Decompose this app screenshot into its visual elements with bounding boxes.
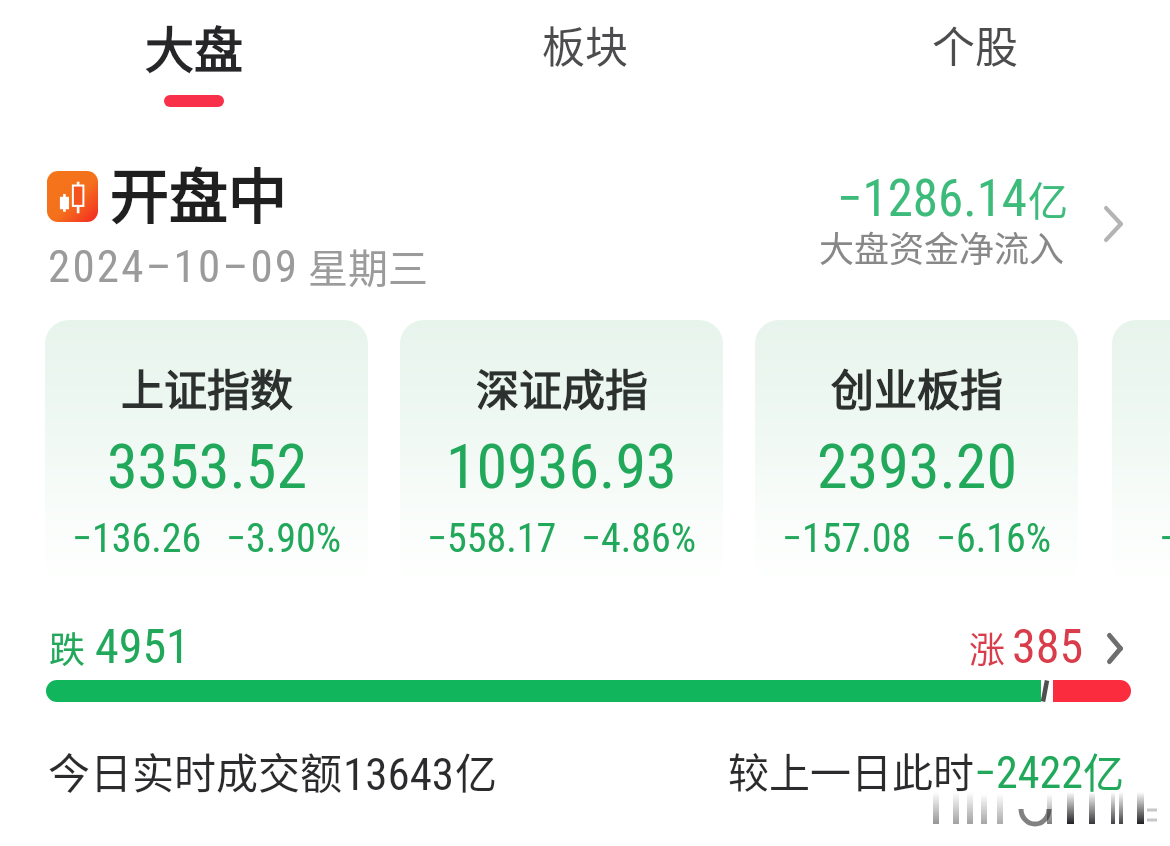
staticText: 板块 xyxy=(542,13,628,75)
staticText: −2422 xyxy=(974,747,1083,799)
staticText: 较上一日此时 xyxy=(728,740,974,799)
staticText: 跌 xyxy=(49,621,86,673)
staticText: −6.16% xyxy=(936,515,1052,562)
staticText: 3353.52 xyxy=(107,430,307,503)
button[interactable]: −1286.14 xyxy=(690,169,1068,229)
staticText: 13643 xyxy=(343,748,455,801)
staticText: −3.90% xyxy=(226,515,342,562)
staticText: −157.08 xyxy=(782,515,912,562)
staticText: 2393.20 xyxy=(817,430,1017,503)
staticText: 今日实时成交额 xyxy=(48,740,343,801)
staticText: 385 xyxy=(1012,618,1084,674)
staticText: 2024–10–09 xyxy=(48,240,300,293)
button[interactable]: 大盘 xyxy=(64,11,324,107)
staticText: −6.20 xyxy=(1159,515,1170,562)
staticText: 星期三 xyxy=(308,237,428,295)
staticText: 深证成指 xyxy=(476,356,648,418)
staticText: −1286.14 xyxy=(837,169,1028,229)
staticText: −4.86% xyxy=(581,515,697,562)
staticText: 大盘 xyxy=(145,11,244,82)
button[interactable]: 深证成指 xyxy=(400,320,723,583)
staticText: −558.17 xyxy=(427,515,557,562)
button[interactable]: 上证指数 xyxy=(45,320,368,583)
staticText: 大盘资金净流入 xyxy=(819,221,1065,272)
staticText: −136.26 xyxy=(72,515,202,562)
button[interactable]: 板块 xyxy=(455,13,715,75)
button[interactable]: 创业板指 xyxy=(755,320,1078,583)
staticText: 上证指数 xyxy=(121,356,293,418)
staticText: 4951 xyxy=(95,618,190,674)
staticText: 亿 xyxy=(1028,170,1068,228)
staticText: 涨 xyxy=(969,621,1006,673)
staticText: 亿 xyxy=(455,740,498,801)
staticText: 开盘中 xyxy=(110,150,288,235)
staticText: 10936.93 xyxy=(446,430,677,503)
staticText: 创业板指 xyxy=(831,356,1003,418)
button[interactable]: 个股 xyxy=(845,13,1105,75)
staticText: 亿 xyxy=(1083,740,1124,799)
button[interactable]: 北证50 xyxy=(1112,320,1170,583)
staticText: 个股 xyxy=(932,13,1018,75)
button[interactable]: 跌 xyxy=(49,618,1123,674)
button[interactable]: 查看大盘资金净流入 xyxy=(1090,196,1136,252)
